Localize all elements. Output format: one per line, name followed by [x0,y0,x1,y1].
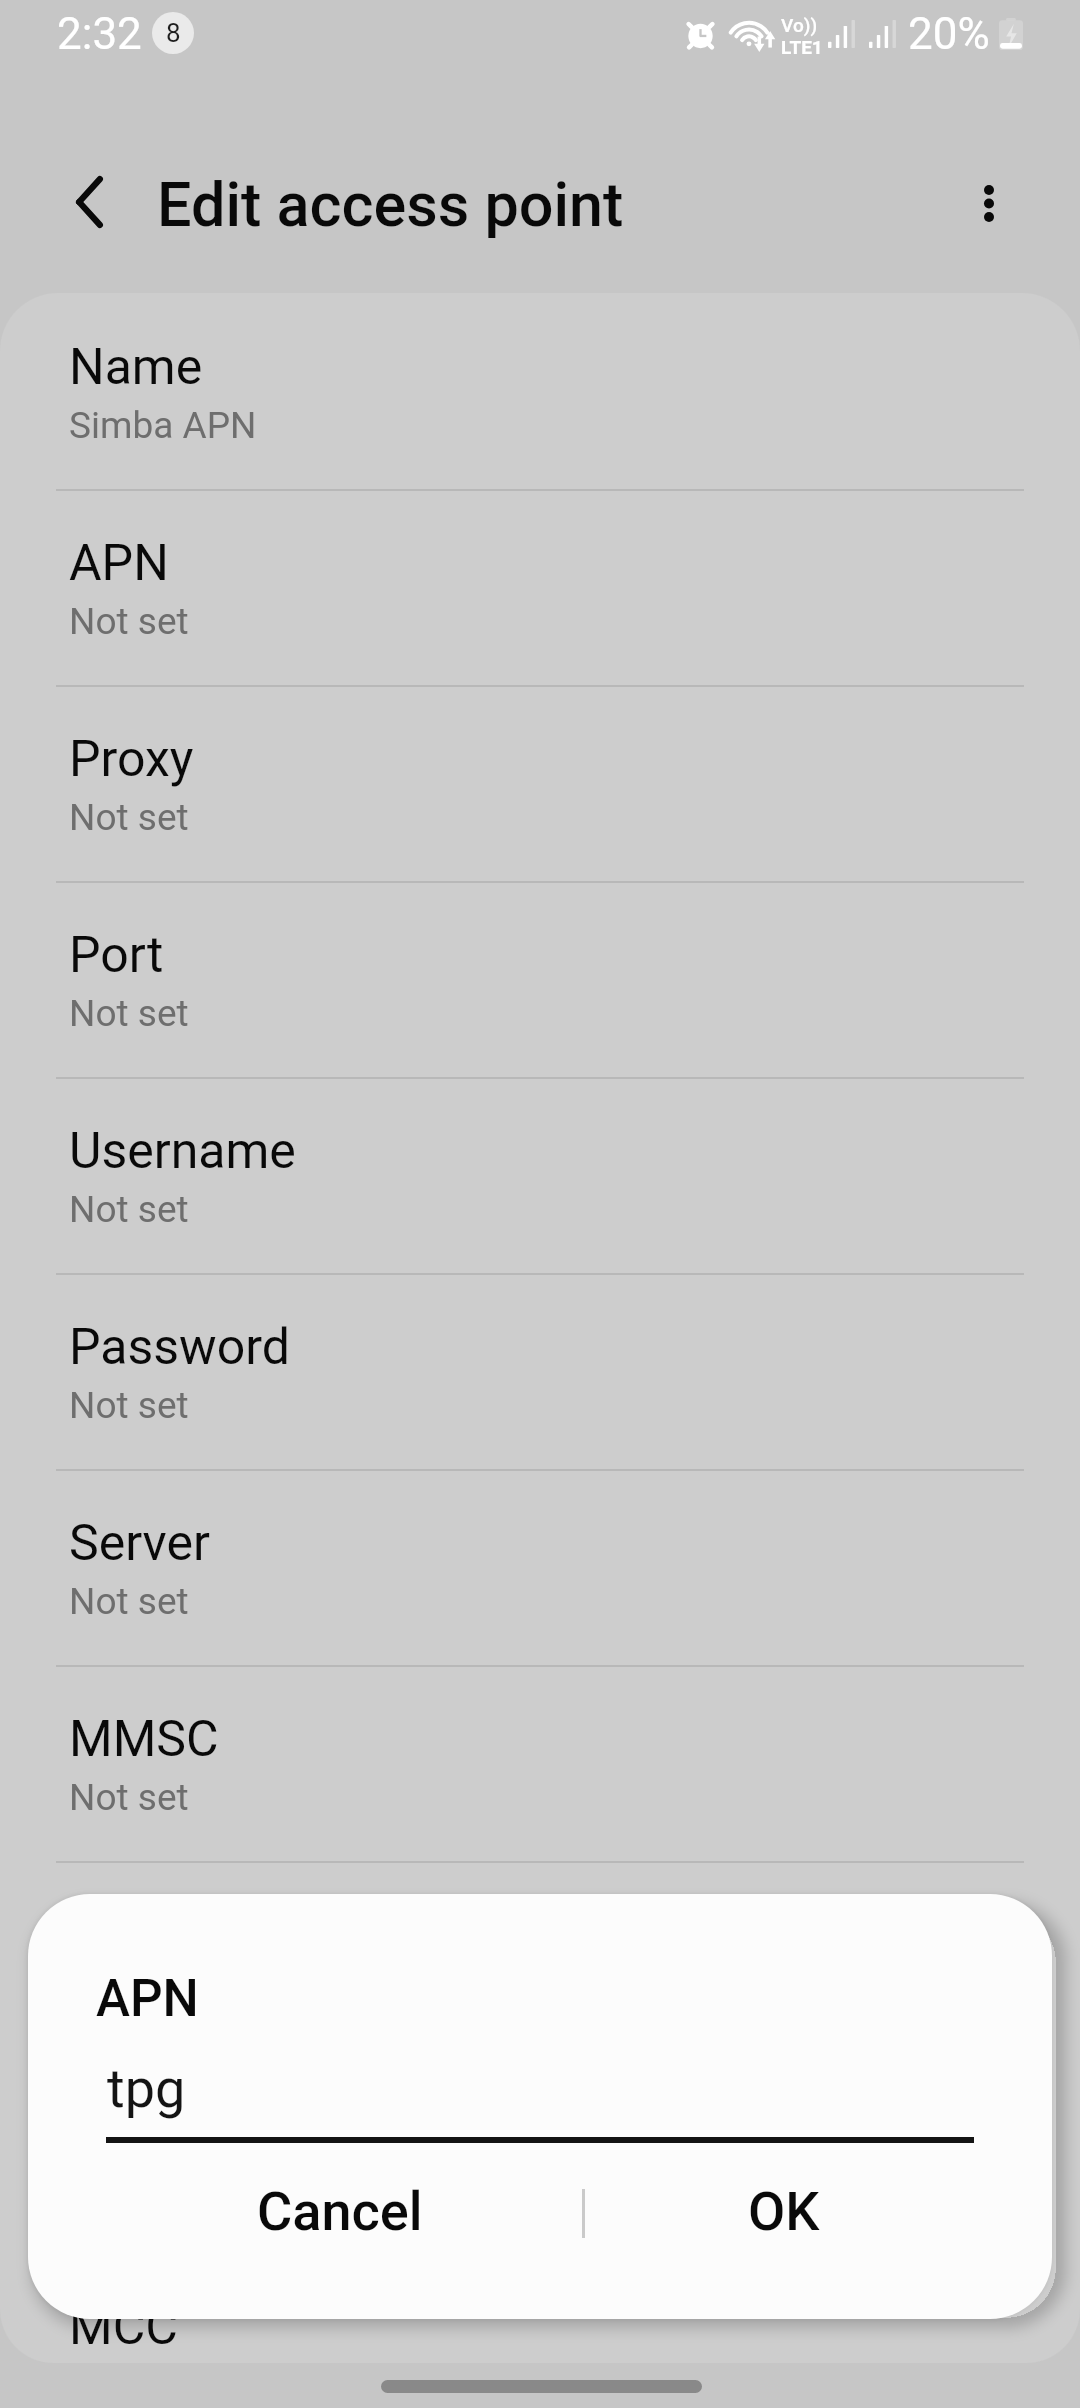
staticText: LTE1 [781,36,823,58]
staticText: Server [69,1514,210,1573]
button[interactable]: Server [0,1471,1080,1665]
staticText: Username [69,1122,296,1181]
staticText: Not set [69,1580,189,1623]
staticText: Port [69,926,164,985]
staticText: Not set [69,1972,189,2015]
staticText: Not set [69,796,189,839]
staticText: MMSC [69,1710,219,1769]
button[interactable]: More options [939,153,1039,253]
staticText: Name [69,338,203,397]
staticText: Not set [69,600,189,643]
button[interactable]: Password [0,1275,1080,1469]
staticText: tpg [107,2057,186,2120]
button[interactable]: MCC [0,2255,1080,2363]
staticText: Vo)) [781,14,818,36]
staticText: OK [748,2180,820,2243]
button[interactable]: Cancel [28,2152,612,2270]
staticText: 8 [166,18,181,48]
button[interactable]: Port [0,883,1080,1077]
button[interactable]: MMS proxy [0,1863,1080,2057]
staticText: Not set [69,1188,189,1231]
button[interactable]: MMS port [0,2059,1080,2253]
staticText: 2:32 [57,8,142,60]
button[interactable]: OK [612,2152,1052,2270]
button[interactable]: Proxy [0,687,1080,881]
staticText: Password [69,1318,290,1377]
button[interactable]: Name [0,295,1080,489]
staticText: Proxy [69,730,194,789]
staticText: Edit access point [157,169,624,240]
staticText: Not set [69,1776,189,1819]
button[interactable]: Navigate up [39,152,139,252]
staticText: Simba APN [69,404,257,447]
staticText: Not set [69,992,189,1035]
staticText: Not set [69,1384,189,1427]
button[interactable]: APN [0,491,1080,685]
staticText: MCC [69,2298,178,2357]
button[interactable]: Username [0,1079,1080,1273]
staticText: APN [96,1969,199,2029]
staticText: MMS port [69,2102,290,2161]
staticText: 20% [908,8,990,60]
staticText: APN [69,534,169,593]
button[interactable]: APN value [106,2044,974,2143]
staticText: Cancel [257,2180,423,2243]
button[interactable]: MMSC [0,1667,1080,1861]
